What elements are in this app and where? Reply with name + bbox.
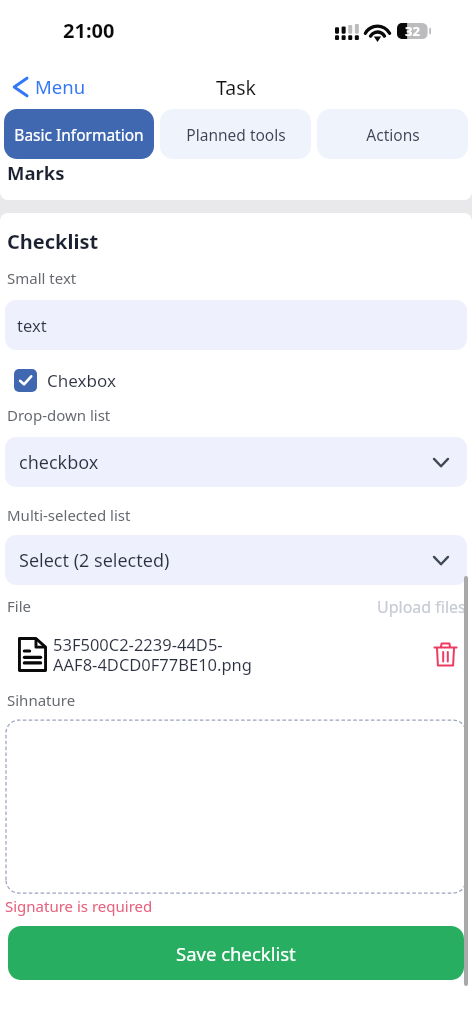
button[interactable]: Basic Information xyxy=(4,109,154,159)
button[interactable]: Actions xyxy=(317,109,468,159)
button[interactable]: Upload files xyxy=(377,596,466,618)
staticText: Select (2 selected) xyxy=(19,548,170,573)
staticText: 32 xyxy=(405,22,420,38)
staticText: Planned tools xyxy=(186,124,286,145)
staticText: Chexbox xyxy=(47,369,116,392)
button[interactable]: Signature pad xyxy=(6,720,466,893)
button[interactable]: text xyxy=(5,300,467,350)
staticText: Checklist xyxy=(7,228,99,255)
staticText: Signature is required xyxy=(5,896,153,916)
staticText: Sihnature xyxy=(7,690,76,710)
button[interactable]: Chexbox xyxy=(14,369,122,392)
button[interactable]: Planned tools xyxy=(160,109,311,159)
button[interactable]: Save checklist xyxy=(8,926,464,980)
staticText: Save checklist xyxy=(176,941,296,966)
staticText: File xyxy=(7,596,31,616)
staticText: text xyxy=(17,314,47,336)
staticText: 21:00 xyxy=(63,17,115,44)
staticText: Actions xyxy=(366,124,420,145)
staticText: Basic Information xyxy=(14,124,144,145)
button[interactable]: checkbox xyxy=(5,437,467,487)
button[interactable]: Select (2 selected) xyxy=(5,535,467,585)
staticText: 53F500C2-2239-44D5- AAF8-4DCD0F77BE10.pn… xyxy=(53,633,252,676)
staticText: Marks xyxy=(7,161,65,185)
staticText: checkbox xyxy=(19,450,99,475)
button[interactable]: Menu xyxy=(12,72,94,101)
staticText: Small text xyxy=(7,268,77,288)
staticText: Drop-down list xyxy=(7,405,111,425)
staticText: Task xyxy=(216,74,256,101)
staticText: Multi-selected list xyxy=(7,505,131,525)
staticText: Menu xyxy=(35,74,86,99)
button[interactable]: Delete file xyxy=(428,637,462,671)
